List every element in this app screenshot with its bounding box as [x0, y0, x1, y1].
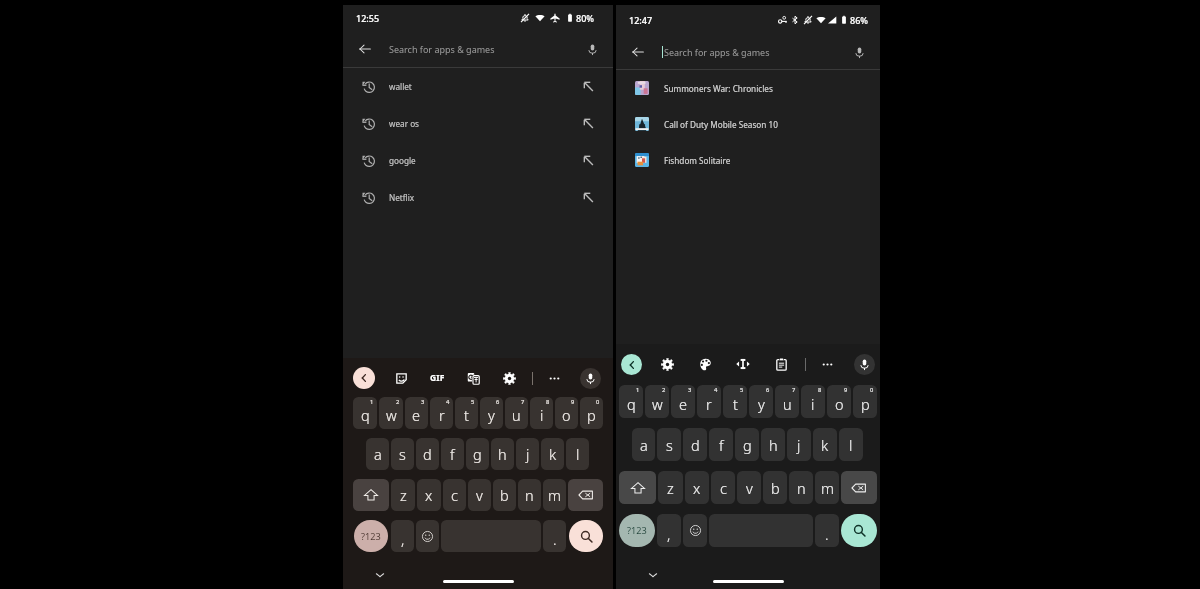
button[interactable]: g	[735, 428, 759, 461]
button[interactable]: Hide keyboard	[374, 569, 386, 581]
button[interactable]: Search	[569, 520, 603, 552]
button[interactable]: h	[761, 428, 785, 461]
button[interactable]: 6	[480, 397, 503, 429]
button[interactable]: Netflix	[343, 179, 613, 216]
button[interactable]: 8	[530, 397, 553, 429]
button[interactable]: .	[543, 520, 566, 552]
button[interactable]: Backspace	[841, 471, 877, 504]
button[interactable]: 8	[801, 385, 825, 418]
button[interactable]: 0	[580, 397, 603, 429]
button[interactable]: .	[815, 514, 839, 547]
button[interactable]: d	[683, 428, 707, 461]
button[interactable]: ,	[391, 520, 414, 552]
button[interactable]: f	[709, 428, 733, 461]
button[interactable]: Stickers	[392, 369, 410, 387]
button[interactable]: v	[737, 471, 761, 504]
button[interactable]: g	[466, 438, 489, 470]
button[interactable]: 5	[455, 397, 478, 429]
button[interactable]: 0	[853, 385, 877, 418]
button[interactable]: ?123	[354, 520, 388, 552]
button[interactable]: 7	[775, 385, 799, 418]
button[interactable]: s	[657, 428, 681, 461]
button[interactable]: z	[391, 479, 415, 511]
button[interactable]: l	[566, 438, 589, 470]
button[interactable]: More	[818, 355, 836, 373]
button[interactable]: google	[343, 142, 613, 179]
button[interactable]: 2	[379, 397, 403, 429]
button[interactable]: 5	[723, 385, 747, 418]
button[interactable]: 3	[405, 397, 428, 429]
button[interactable]: ?123	[619, 514, 655, 547]
button[interactable]: Back	[627, 41, 649, 63]
button[interactable]: v	[468, 479, 491, 511]
button[interactable]: 4	[697, 385, 721, 418]
staticText: 6	[496, 398, 500, 406]
button[interactable]: l	[839, 428, 863, 461]
button[interactable]: j	[787, 428, 811, 461]
button[interactable]: 1	[353, 397, 377, 429]
button[interactable]: c	[711, 471, 735, 504]
button[interactable]: 4	[430, 397, 453, 429]
button[interactable]: Shift	[353, 479, 389, 511]
button[interactable]: GIF	[426, 367, 448, 389]
button[interactable]: Search	[841, 514, 877, 547]
button[interactable]: m	[815, 471, 839, 504]
button[interactable]: m	[543, 479, 566, 511]
button[interactable]: z	[658, 471, 683, 504]
button[interactable]: x	[417, 479, 441, 511]
button[interactable]: Translate	[464, 369, 482, 387]
button[interactable]: ,	[657, 514, 681, 547]
button[interactable]: n	[518, 479, 541, 511]
button[interactable]: Text editing	[734, 355, 752, 373]
button[interactable]: Settings	[658, 355, 676, 373]
button[interactable]: 6	[749, 385, 773, 418]
button[interactable]: Voice input	[580, 368, 601, 389]
button[interactable]: Voice input	[854, 354, 875, 375]
button[interactable]: More	[545, 369, 563, 387]
button[interactable]: Fishdom Solitaire	[616, 142, 880, 178]
button[interactable]: 9	[827, 385, 851, 418]
button[interactable]: Back	[621, 354, 642, 375]
button[interactable]: Back	[354, 38, 376, 60]
button[interactable]: k	[541, 438, 564, 470]
button[interactable]: Shift	[619, 471, 656, 504]
button[interactable]: a	[632, 428, 655, 461]
button[interactable]: b	[493, 479, 516, 511]
button[interactable]: Hide keyboard	[647, 569, 659, 581]
button[interactable]: Emoji	[416, 520, 439, 552]
button[interactable]: 9	[555, 397, 578, 429]
button[interactable]: d	[416, 438, 439, 470]
button[interactable]: b	[763, 471, 787, 504]
button[interactable]: j	[516, 438, 539, 470]
button[interactable]: Clipboard	[772, 355, 790, 373]
staticText: 5	[471, 398, 475, 406]
button[interactable]: k	[813, 428, 837, 461]
button[interactable]: a	[366, 438, 389, 470]
button[interactable]: x	[685, 471, 709, 504]
button[interactable]: Themes	[696, 355, 714, 373]
staticText: r	[439, 405, 445, 425]
button[interactable]: wear os	[343, 105, 613, 142]
button[interactable]: 2	[645, 385, 669, 418]
staticText: ,	[667, 524, 671, 544]
button[interactable]: Voice search	[848, 41, 870, 63]
button[interactable]: Summoners War: Chronicles	[616, 70, 880, 106]
button[interactable]: Backspace	[568, 479, 603, 511]
button[interactable]: h	[491, 438, 514, 470]
button[interactable]: Voice search	[581, 38, 603, 60]
button[interactable]: Emoji	[683, 514, 707, 547]
button[interactable]: Back	[353, 367, 375, 389]
button[interactable]: 7	[505, 397, 528, 429]
staticText: s	[666, 435, 673, 455]
button[interactable]: n	[789, 471, 813, 504]
button[interactable]: wallet	[343, 68, 613, 105]
button[interactable]: 1	[619, 385, 643, 418]
button[interactable]: 3	[671, 385, 695, 418]
button[interactable]: s	[391, 438, 414, 470]
button[interactable]: c	[443, 479, 466, 511]
button[interactable]: f	[441, 438, 464, 470]
button[interactable]: Settings	[500, 369, 518, 387]
button[interactable]: Call of Duty Mobile Season 10	[616, 106, 880, 142]
